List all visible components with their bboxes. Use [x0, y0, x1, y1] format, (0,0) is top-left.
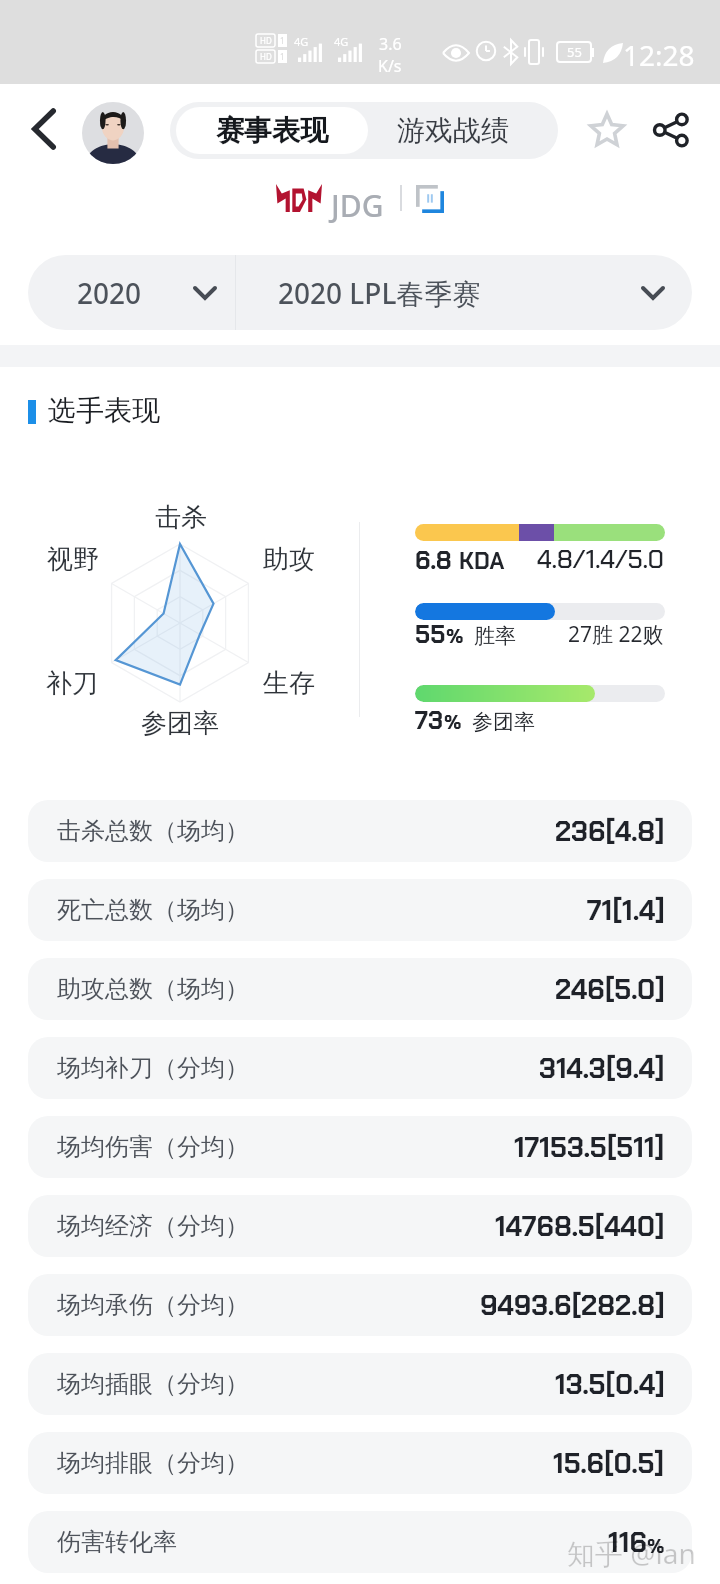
- staticText: 1: [280, 51, 285, 62]
- staticText: 场均伤害（分均）: [57, 1132, 249, 1162]
- staticText: 2020 LPL春季赛: [278, 274, 481, 312]
- staticText: 14768.5[440]: [495, 1208, 665, 1244]
- staticText: 生存: [263, 667, 315, 700]
- button[interactable]: 击杀总数（场均）: [28, 800, 692, 862]
- button[interactable]: Player avatar: [82, 102, 144, 164]
- staticText: %: [647, 1533, 665, 1559]
- button[interactable]: Share: [647, 106, 695, 154]
- button[interactable]: 场均排眼（分均）: [28, 1432, 692, 1494]
- staticText: K/s: [378, 55, 402, 77]
- button[interactable]: 2020: [28, 255, 235, 330]
- staticText: %: [444, 709, 462, 735]
- staticText: HD: [260, 51, 272, 62]
- staticText: 1: [280, 35, 285, 46]
- button[interactable]: 赛事表现: [176, 107, 368, 154]
- staticText: 15.6[0.5]: [553, 1445, 665, 1481]
- staticText: 场均补刀（分均）: [57, 1053, 249, 1083]
- button[interactable]: 游戏战绩: [368, 102, 558, 159]
- staticText: 助攻: [263, 543, 315, 576]
- staticText: 27胜 22败: [568, 620, 664, 649]
- staticText: 55: [567, 43, 582, 61]
- staticText: 场均排眼（分均）: [57, 1448, 249, 1478]
- staticText: 击杀: [155, 501, 207, 534]
- staticText: 4G: [334, 34, 349, 49]
- staticText: 4.8/1.4/5.0: [537, 542, 665, 576]
- staticText: 知乎 @lan: [567, 1534, 696, 1572]
- staticText: 赛事表现: [216, 113, 328, 148]
- staticText: KDA: [459, 546, 505, 576]
- staticText: 12:28: [623, 36, 695, 74]
- staticText: 游戏战绩: [397, 113, 509, 148]
- staticText: 场均承伤（分均）: [57, 1290, 249, 1320]
- staticText: 视野: [47, 543, 99, 576]
- staticText: 补刀: [46, 667, 98, 700]
- staticText: 9493.6[282.8]: [480, 1287, 665, 1323]
- staticText: 246[5.0]: [555, 971, 665, 1007]
- button[interactable]: Back: [20, 105, 68, 153]
- button[interactable]: 场均插眼（分均）: [28, 1353, 692, 1415]
- staticText: 死亡总数（场均）: [57, 895, 249, 925]
- staticText: 55: [415, 618, 446, 650]
- staticText: 4G: [294, 34, 309, 49]
- staticText: 236[4.8]: [555, 813, 665, 849]
- staticText: 13.5[0.4]: [555, 1366, 665, 1402]
- staticText: 314.3[9.4]: [539, 1050, 665, 1086]
- staticText: 3.6: [379, 33, 402, 55]
- button[interactable]: 场均伤害（分均）: [28, 1116, 692, 1178]
- button[interactable]: 场均承伤（分均）: [28, 1274, 692, 1336]
- staticText: 参团率: [141, 707, 219, 740]
- staticText: 71[1.4]: [587, 892, 665, 928]
- staticText: 2020: [77, 274, 142, 312]
- button[interactable]: 场均经济（分均）: [28, 1195, 692, 1257]
- button[interactable]: 助攻总数（场均）: [28, 958, 692, 1020]
- staticText: 17153.5[511]: [514, 1129, 665, 1165]
- staticText: 116: [608, 1524, 647, 1560]
- staticText: 参团率: [472, 709, 535, 735]
- staticText: %: [446, 623, 464, 649]
- staticText: 场均经济（分均）: [57, 1211, 249, 1241]
- button[interactable]: 死亡总数（场均）: [28, 879, 692, 941]
- staticText: 6.8: [415, 544, 452, 576]
- staticText: 击杀总数（场均）: [57, 816, 249, 846]
- button[interactable]: 场均补刀（分均）: [28, 1037, 692, 1099]
- staticText: HD: [260, 35, 272, 46]
- staticText: 助攻总数（场均）: [57, 974, 249, 1004]
- staticText: JDG: [331, 185, 384, 226]
- staticText: 73: [415, 704, 444, 736]
- staticText: 伤害转化率: [57, 1527, 177, 1557]
- button[interactable]: 伤害转化率: [28, 1511, 692, 1573]
- staticText: 场均插眼（分均）: [57, 1369, 249, 1399]
- staticText: 胜率: [474, 623, 516, 649]
- staticText: 选手表现: [48, 393, 160, 428]
- button[interactable]: 2020 LPL春季赛: [236, 255, 692, 330]
- button[interactable]: Favorite: [583, 106, 631, 154]
